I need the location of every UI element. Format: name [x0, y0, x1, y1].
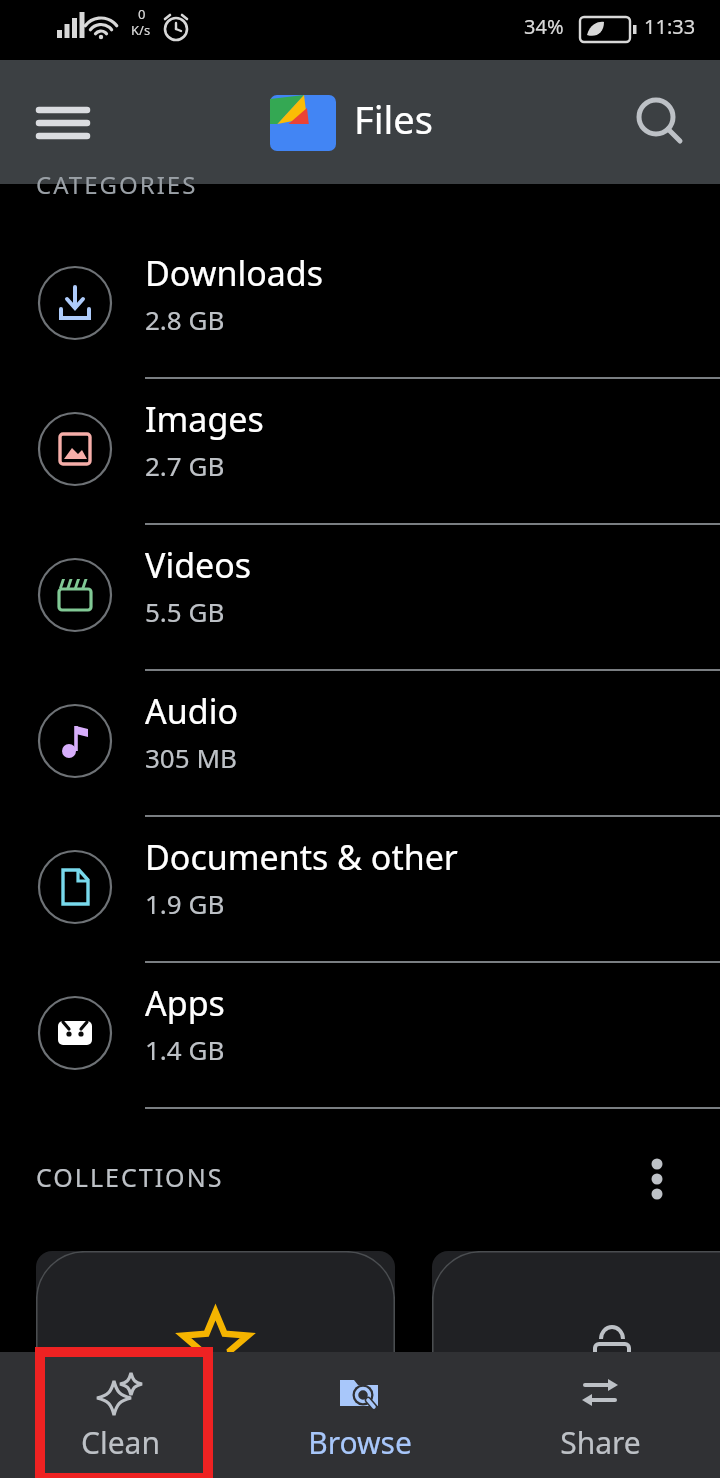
button[interactable]: Open navigation menu: [24, 84, 102, 162]
staticText: 1.9 GB: [145, 886, 225, 921]
button[interactable]: More options: [627, 1148, 687, 1208]
staticText: 11:33: [644, 13, 696, 40]
staticText: Audio: [145, 688, 238, 734]
button[interactable]: Videos: [0, 524, 720, 670]
staticText: Images: [145, 396, 264, 442]
button[interactable]: [36, 1251, 395, 1451]
staticText: Browse: [308, 1422, 412, 1463]
button[interactable]: [432, 1251, 720, 1451]
staticText: 5.5 GB: [145, 594, 225, 629]
staticText: Videos: [145, 542, 252, 588]
button[interactable]: Search: [622, 84, 700, 162]
staticText: Downloads: [145, 250, 324, 296]
staticText: Documents & other: [145, 834, 458, 880]
staticText: COLLECTIONS: [36, 1160, 224, 1194]
staticText: K/s: [131, 21, 151, 39]
button[interactable]: Browse: [240, 1352, 480, 1478]
button[interactable]: Clean: [0, 1352, 240, 1478]
staticText: Files: [354, 93, 433, 145]
button[interactable]: Images: [0, 378, 720, 524]
staticText: 0: [138, 5, 146, 23]
staticText: 34%: [524, 13, 564, 40]
staticText: 305 MB: [145, 740, 237, 775]
button[interactable]: Documents & other: [0, 816, 720, 962]
staticText: 2.8 GB: [145, 302, 225, 337]
staticText: 2.7 GB: [145, 448, 225, 483]
button[interactable]: Share: [480, 1352, 720, 1478]
staticText: Share: [560, 1422, 641, 1463]
button[interactable]: Audio: [0, 670, 720, 816]
button[interactable]: Downloads: [0, 232, 720, 378]
button[interactable]: Apps: [0, 962, 720, 1108]
staticText: CATEGORIES: [36, 168, 198, 201]
staticText: Clean: [81, 1422, 160, 1463]
staticText: Apps: [145, 980, 225, 1026]
staticText: 1.4 GB: [145, 1032, 225, 1067]
